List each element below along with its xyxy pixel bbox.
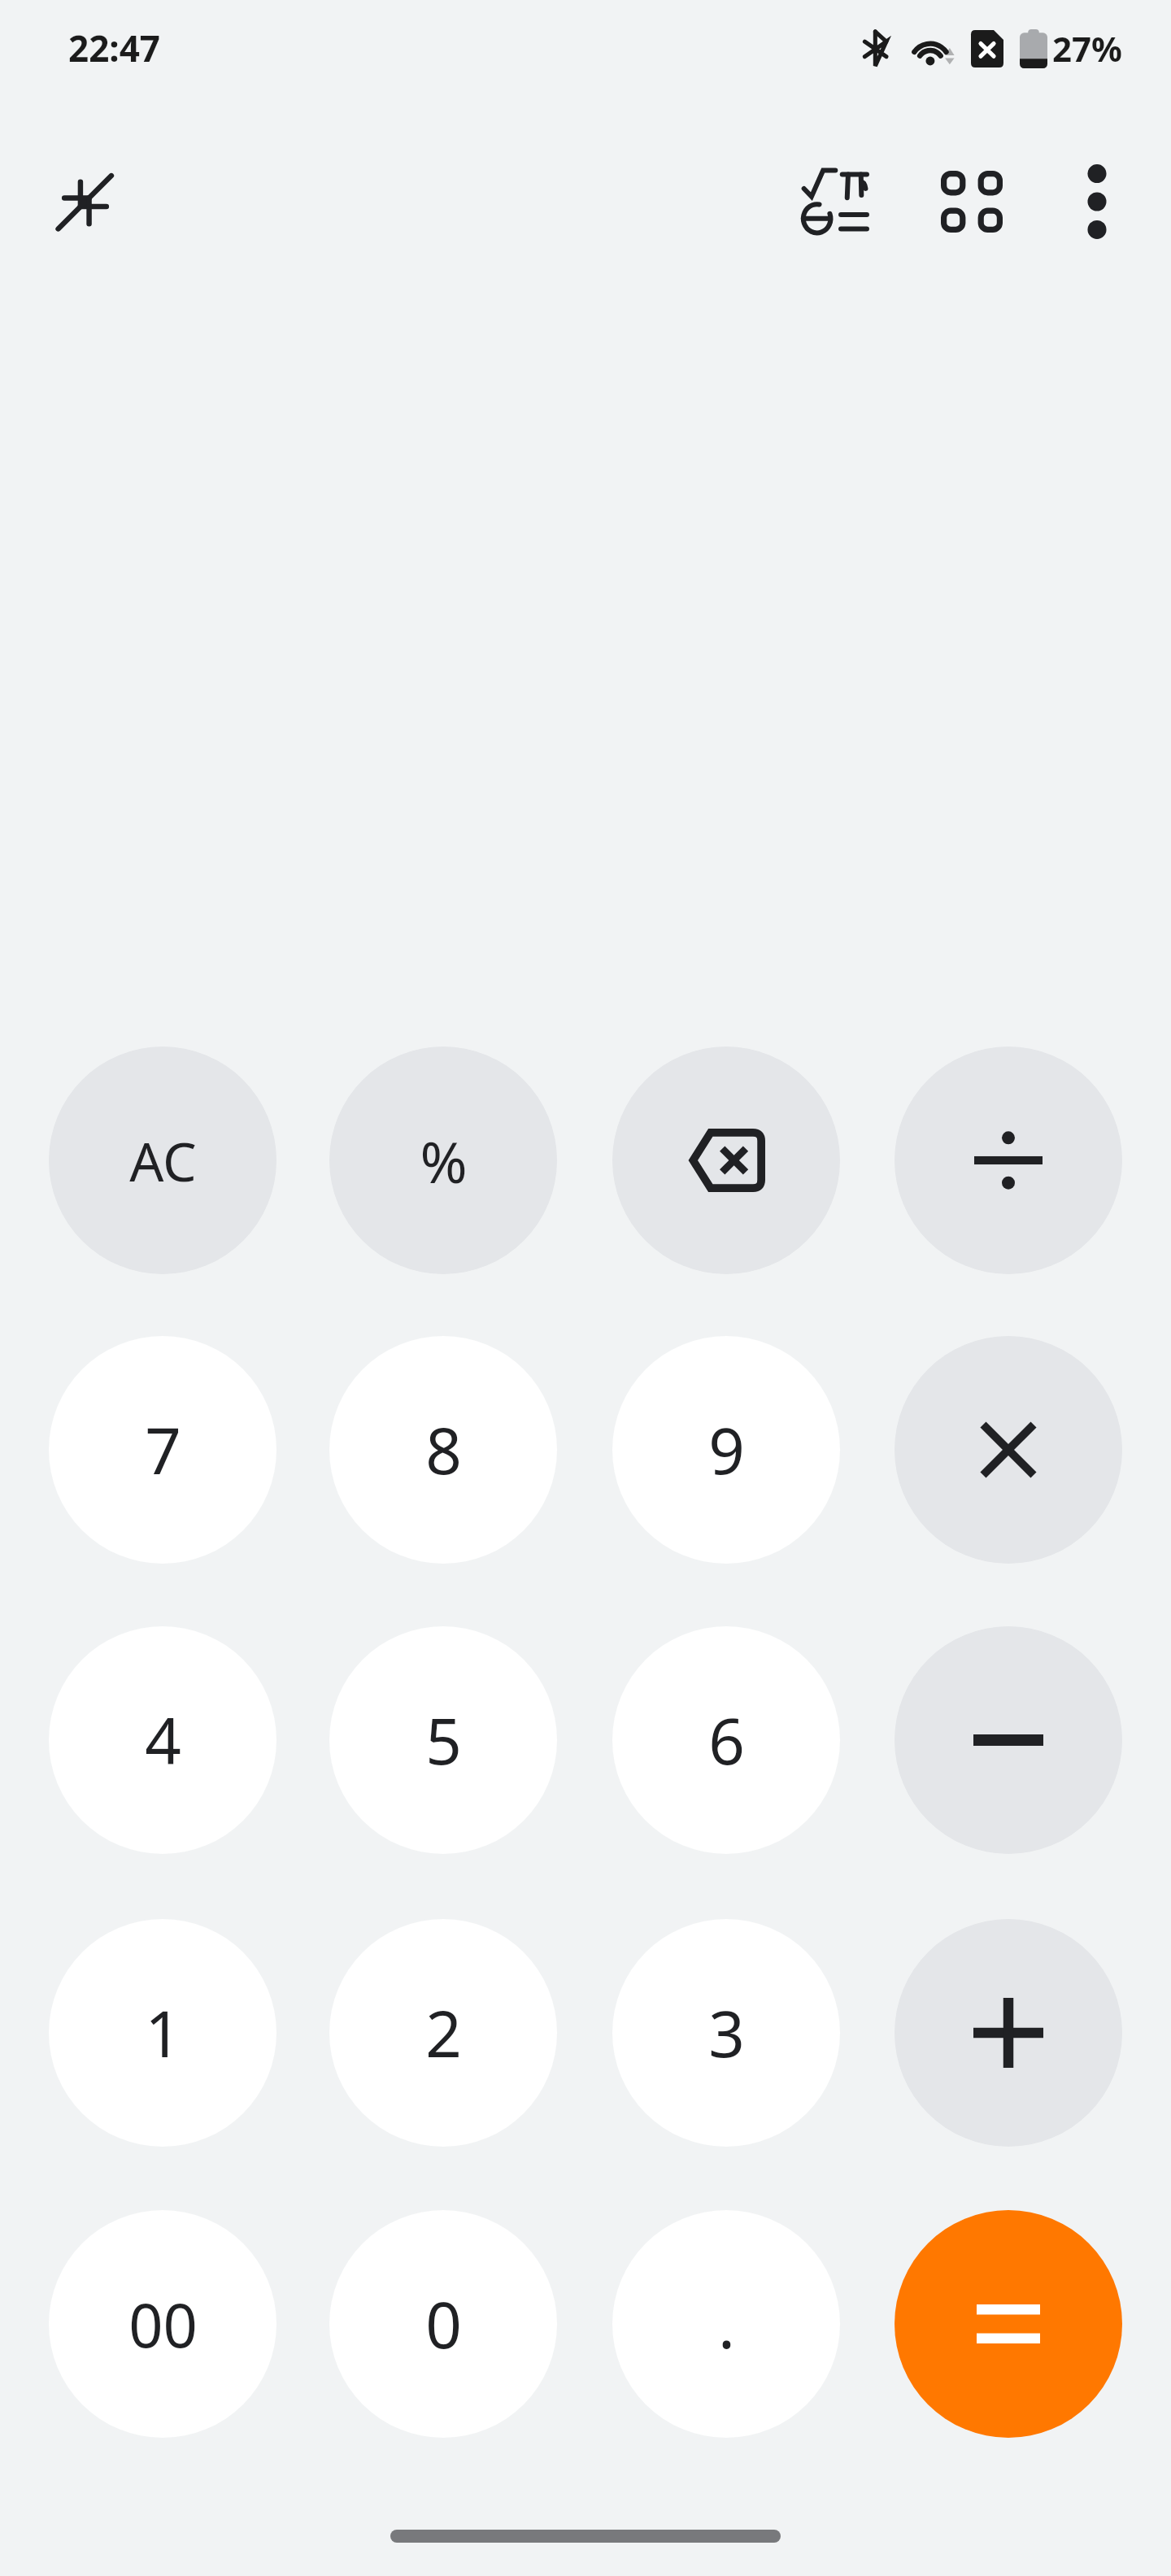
staticText: 4: [145, 1697, 181, 1783]
button[interactable]: 8: [329, 1336, 557, 1564]
staticText: 7: [145, 1407, 181, 1493]
button[interactable]: 7: [49, 1336, 276, 1564]
staticText: 2: [425, 1990, 462, 2076]
button[interactable]: .: [612, 2210, 840, 2438]
button[interactable]: %: [329, 1046, 557, 1274]
staticText: 1: [145, 1990, 181, 2076]
button[interactable]: 1: [49, 1919, 276, 2147]
staticText: 27%: [1052, 25, 1122, 72]
staticText: AC: [129, 1124, 197, 1197]
button[interactable]: More options: [1044, 149, 1150, 255]
button[interactable]: 2: [329, 1919, 557, 2147]
staticText: 3: [708, 1990, 745, 2076]
staticText: 5: [425, 1697, 462, 1783]
staticText: 8: [425, 1407, 462, 1493]
staticText: 22:47: [68, 24, 161, 72]
button[interactable]: 6: [612, 1626, 840, 1854]
button[interactable]: 9: [612, 1336, 840, 1564]
button[interactable]: Multiply: [895, 1336, 1122, 1564]
button[interactable]: AC: [49, 1046, 276, 1274]
button[interactable]: Divide: [895, 1046, 1122, 1274]
button[interactable]: Backspace: [612, 1046, 840, 1274]
button[interactable]: 3: [612, 1919, 840, 2147]
button[interactable]: Equals: [895, 2210, 1122, 2438]
button[interactable]: Scientific mode: [784, 149, 890, 255]
button[interactable]: 4: [49, 1626, 276, 1854]
button[interactable]: 5: [329, 1626, 557, 1854]
staticText: 00: [128, 2283, 198, 2365]
staticText: .: [718, 2281, 735, 2367]
button[interactable]: Keypad layout: [919, 149, 1025, 255]
button[interactable]: Minus: [895, 1626, 1122, 1854]
button[interactable]: Plus: [895, 1919, 1122, 2147]
button[interactable]: 00: [49, 2210, 276, 2438]
staticText: %: [420, 1122, 468, 1199]
button[interactable]: Collapse: [33, 149, 138, 255]
staticText: 9: [708, 1407, 745, 1493]
button[interactable]: 0: [329, 2210, 557, 2438]
staticText: 0: [425, 2281, 462, 2367]
staticText: 6: [708, 1697, 745, 1783]
